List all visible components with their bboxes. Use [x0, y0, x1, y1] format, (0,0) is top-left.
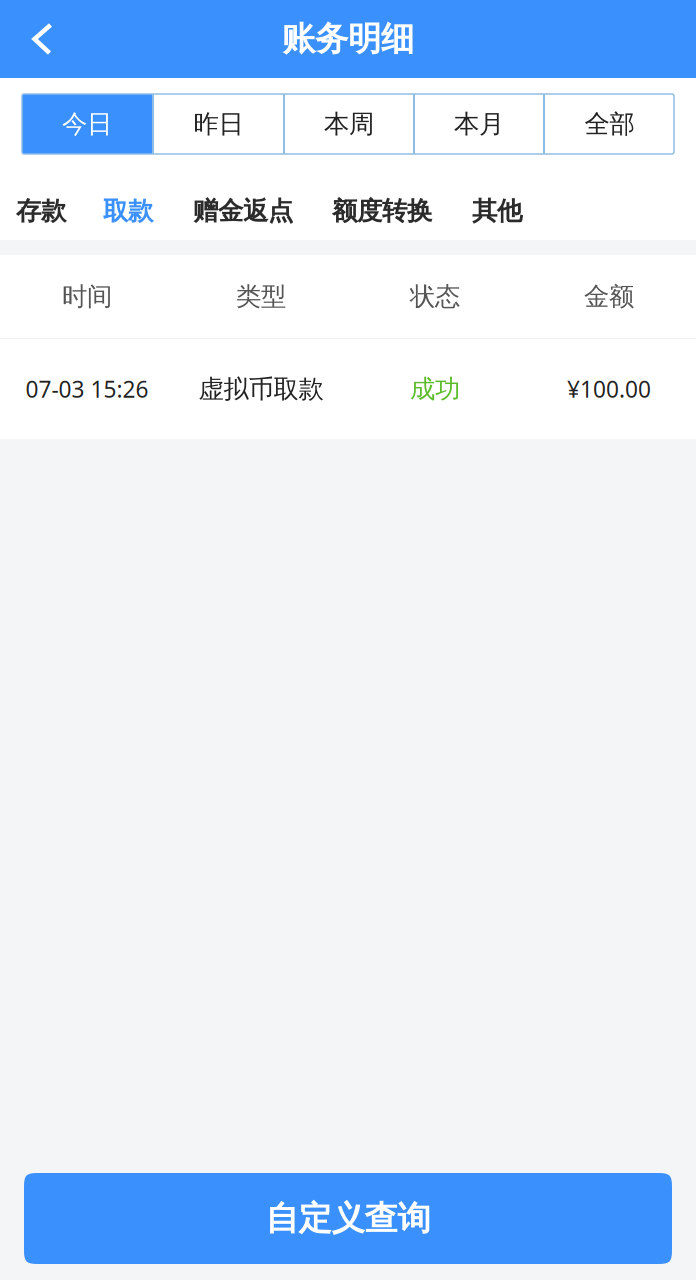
staticText: 虚拟币取款: [198, 373, 323, 404]
staticText: 时间: [62, 281, 112, 312]
staticText: 其他: [472, 195, 522, 226]
button[interactable]: 本周: [285, 94, 415, 154]
button[interactable]: 全部: [545, 94, 674, 154]
staticText: 昨日: [193, 108, 243, 139]
staticText: 类型: [236, 281, 286, 312]
staticText: 存款: [16, 195, 66, 226]
button[interactable]: 赠金返点: [193, 184, 293, 237]
button[interactable]: 自定义查询: [24, 1173, 672, 1264]
staticText: 本月: [454, 108, 504, 139]
button[interactable]: Back: [0, 0, 72, 78]
button[interactable]: 其他: [472, 184, 522, 237]
staticText: 赠金返点: [193, 195, 293, 226]
staticText: 本周: [324, 108, 374, 139]
button[interactable]: 昨日: [154, 94, 285, 154]
button[interactable]: 本月: [415, 94, 545, 154]
staticText: 取款: [103, 195, 153, 226]
staticText: 自定义查询: [265, 1198, 430, 1239]
staticText: 全部: [584, 108, 634, 139]
staticText: ¥100.00: [567, 374, 651, 404]
staticText: 今日: [62, 108, 112, 139]
button[interactable]: 额度转换: [332, 184, 432, 237]
button[interactable]: 取款: [103, 184, 153, 237]
staticText: 金额: [584, 281, 634, 312]
button[interactable]: 今日: [22, 94, 154, 154]
staticText: 07-03 15:26: [25, 374, 148, 404]
button[interactable]: 存款: [16, 184, 66, 237]
staticText: 账务明细: [282, 18, 414, 59]
button[interactable]: 07-03 15:26: [0, 339, 696, 439]
staticText: 额度转换: [332, 195, 432, 226]
staticText: 状态: [410, 281, 460, 312]
staticText: 成功: [410, 373, 460, 404]
